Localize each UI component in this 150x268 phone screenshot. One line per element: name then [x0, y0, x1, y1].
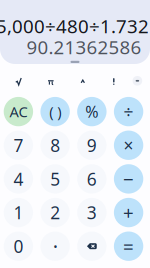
staticText: + — [123, 200, 134, 225]
button[interactable]: More functions — [126, 70, 148, 92]
button[interactable]: 1 — [4, 198, 33, 227]
staticText: ÷ — [124, 100, 134, 123]
staticText: 2 — [50, 201, 60, 224]
button[interactable]: Delete — [77, 231, 107, 261]
button[interactable]: − — [114, 164, 143, 194]
staticText: 9 — [87, 134, 97, 157]
button[interactable]: 9 — [77, 131, 107, 160]
button[interactable]: = — [114, 231, 143, 261]
button[interactable]: 2 — [40, 198, 70, 227]
button[interactable]: AC — [4, 97, 33, 126]
button[interactable]: 8 — [40, 131, 70, 160]
button[interactable]: Square root — [4, 70, 34, 92]
button[interactable]: 6 — [77, 164, 107, 194]
button[interactable]: % — [77, 97, 107, 126]
button[interactable]: Power — [68, 70, 98, 92]
staticText: 3 — [87, 201, 97, 224]
button[interactable]: 5 — [40, 164, 70, 194]
staticText: 0 — [13, 235, 23, 258]
staticText: 90.21362586 — [26, 35, 141, 59]
button[interactable]: · — [40, 231, 70, 261]
button[interactable]: Pi — [36, 71, 66, 93]
button[interactable]: ÷ — [114, 97, 143, 126]
staticText: 8 — [50, 134, 60, 157]
staticText: − — [123, 166, 134, 191]
staticText: AC — [9, 102, 27, 121]
button[interactable]: 7 — [4, 131, 33, 160]
staticText: 4 — [13, 167, 23, 190]
button[interactable]: 4 — [4, 164, 33, 194]
staticText: % — [85, 101, 98, 122]
staticText: 5,000÷480÷1.732 — [0, 14, 149, 38]
staticText: 5 — [50, 167, 60, 190]
staticText: 6 — [87, 167, 97, 190]
staticText: 7 — [13, 134, 23, 157]
staticText: × — [124, 134, 134, 157]
staticText: 1 — [13, 201, 23, 224]
button[interactable]: ( ) — [40, 97, 70, 126]
staticText: = — [123, 234, 134, 259]
staticText: · — [53, 233, 58, 259]
button[interactable]: Factorial — [99, 70, 129, 92]
staticText: ( ) — [49, 102, 61, 121]
button[interactable]: + — [114, 198, 143, 227]
button[interactable]: 3 — [77, 198, 107, 227]
button[interactable]: 0 — [4, 231, 33, 261]
button[interactable]: × — [114, 131, 143, 160]
